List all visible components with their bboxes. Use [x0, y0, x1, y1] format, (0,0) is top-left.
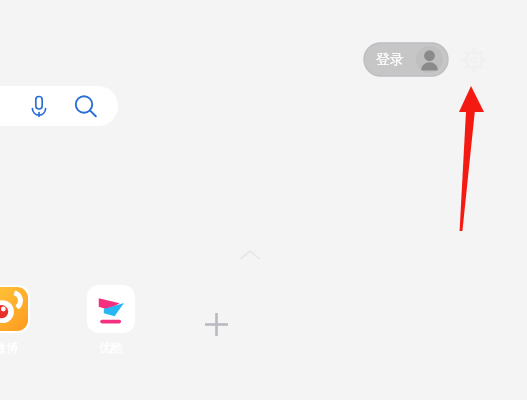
button[interactable]: Add — [200, 308, 232, 340]
button[interactable]: 登录 — [364, 43, 448, 76]
staticText: 微博 — [0, 340, 18, 355]
button[interactable]: 优酷 — [83, 285, 139, 355]
button[interactable]: 微博 — [0, 285, 34, 355]
button[interactable]: Search — [0, 86, 118, 126]
staticText: 登录 — [376, 51, 404, 69]
staticText: 优酷 — [99, 340, 123, 355]
